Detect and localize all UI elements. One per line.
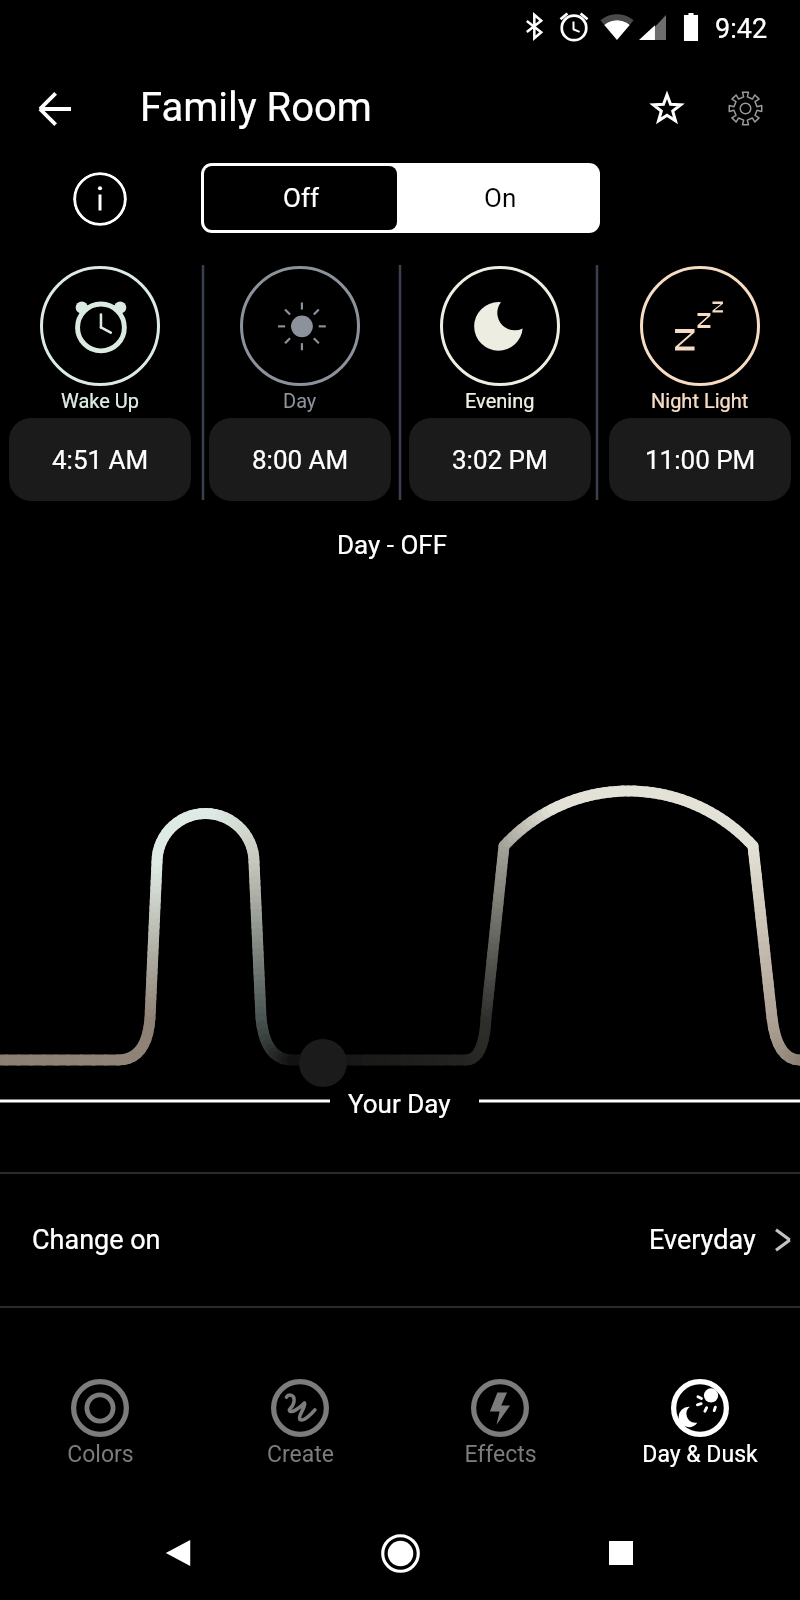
staticText: Day - OFF: [337, 530, 448, 560]
staticText: Evening: [465, 389, 535, 412]
staticText: 9:42: [715, 13, 768, 45]
button[interactable]: Create: [200, 1348, 400, 1488]
staticText: Effects: [464, 1441, 537, 1468]
staticText: 3:02 PM: [452, 445, 548, 475]
staticText: Day & Dusk: [642, 1441, 758, 1468]
button[interactable]: Off: [204, 166, 397, 230]
button[interactable]: Favorite: [635, 76, 699, 140]
button[interactable]: Effects: [400, 1348, 600, 1488]
staticText: 4:51 AM: [52, 445, 149, 475]
button[interactable]: Wake Up: [0, 0, 200, 512]
button[interactable]: Evening: [400, 0, 600, 512]
staticText: Your Day: [348, 1089, 451, 1119]
button[interactable]: Settings: [713, 76, 777, 140]
staticText: Create: [267, 1441, 334, 1468]
button[interactable]: Info: [73, 172, 127, 226]
button[interactable]: Day & Dusk: [600, 1348, 800, 1488]
button[interactable]: Recents: [577, 1509, 665, 1597]
staticText: On: [484, 183, 517, 213]
button[interactable]: Night Light: [600, 0, 800, 512]
staticText: Off: [283, 183, 319, 213]
staticText: Day: [283, 389, 317, 412]
button[interactable]: Change on: [0, 1174, 800, 1306]
staticText: Wake Up: [61, 389, 140, 412]
button[interactable]: Back: [134, 1509, 222, 1597]
staticText: Colors: [67, 1441, 134, 1468]
button[interactable]: Home: [356, 1509, 444, 1597]
button[interactable]: Colors: [0, 1348, 200, 1488]
button[interactable]: Navigate up: [23, 77, 86, 140]
button[interactable]: On: [400, 163, 600, 233]
staticText: 11:00 PM: [645, 445, 756, 475]
staticText: Night Light: [651, 389, 749, 412]
button[interactable]: Day: [200, 0, 400, 512]
staticText: Family Room: [140, 84, 372, 131]
staticText: Everyday: [649, 1224, 756, 1256]
staticText: Change on: [32, 1224, 161, 1256]
staticText: 8:00 AM: [252, 445, 349, 475]
